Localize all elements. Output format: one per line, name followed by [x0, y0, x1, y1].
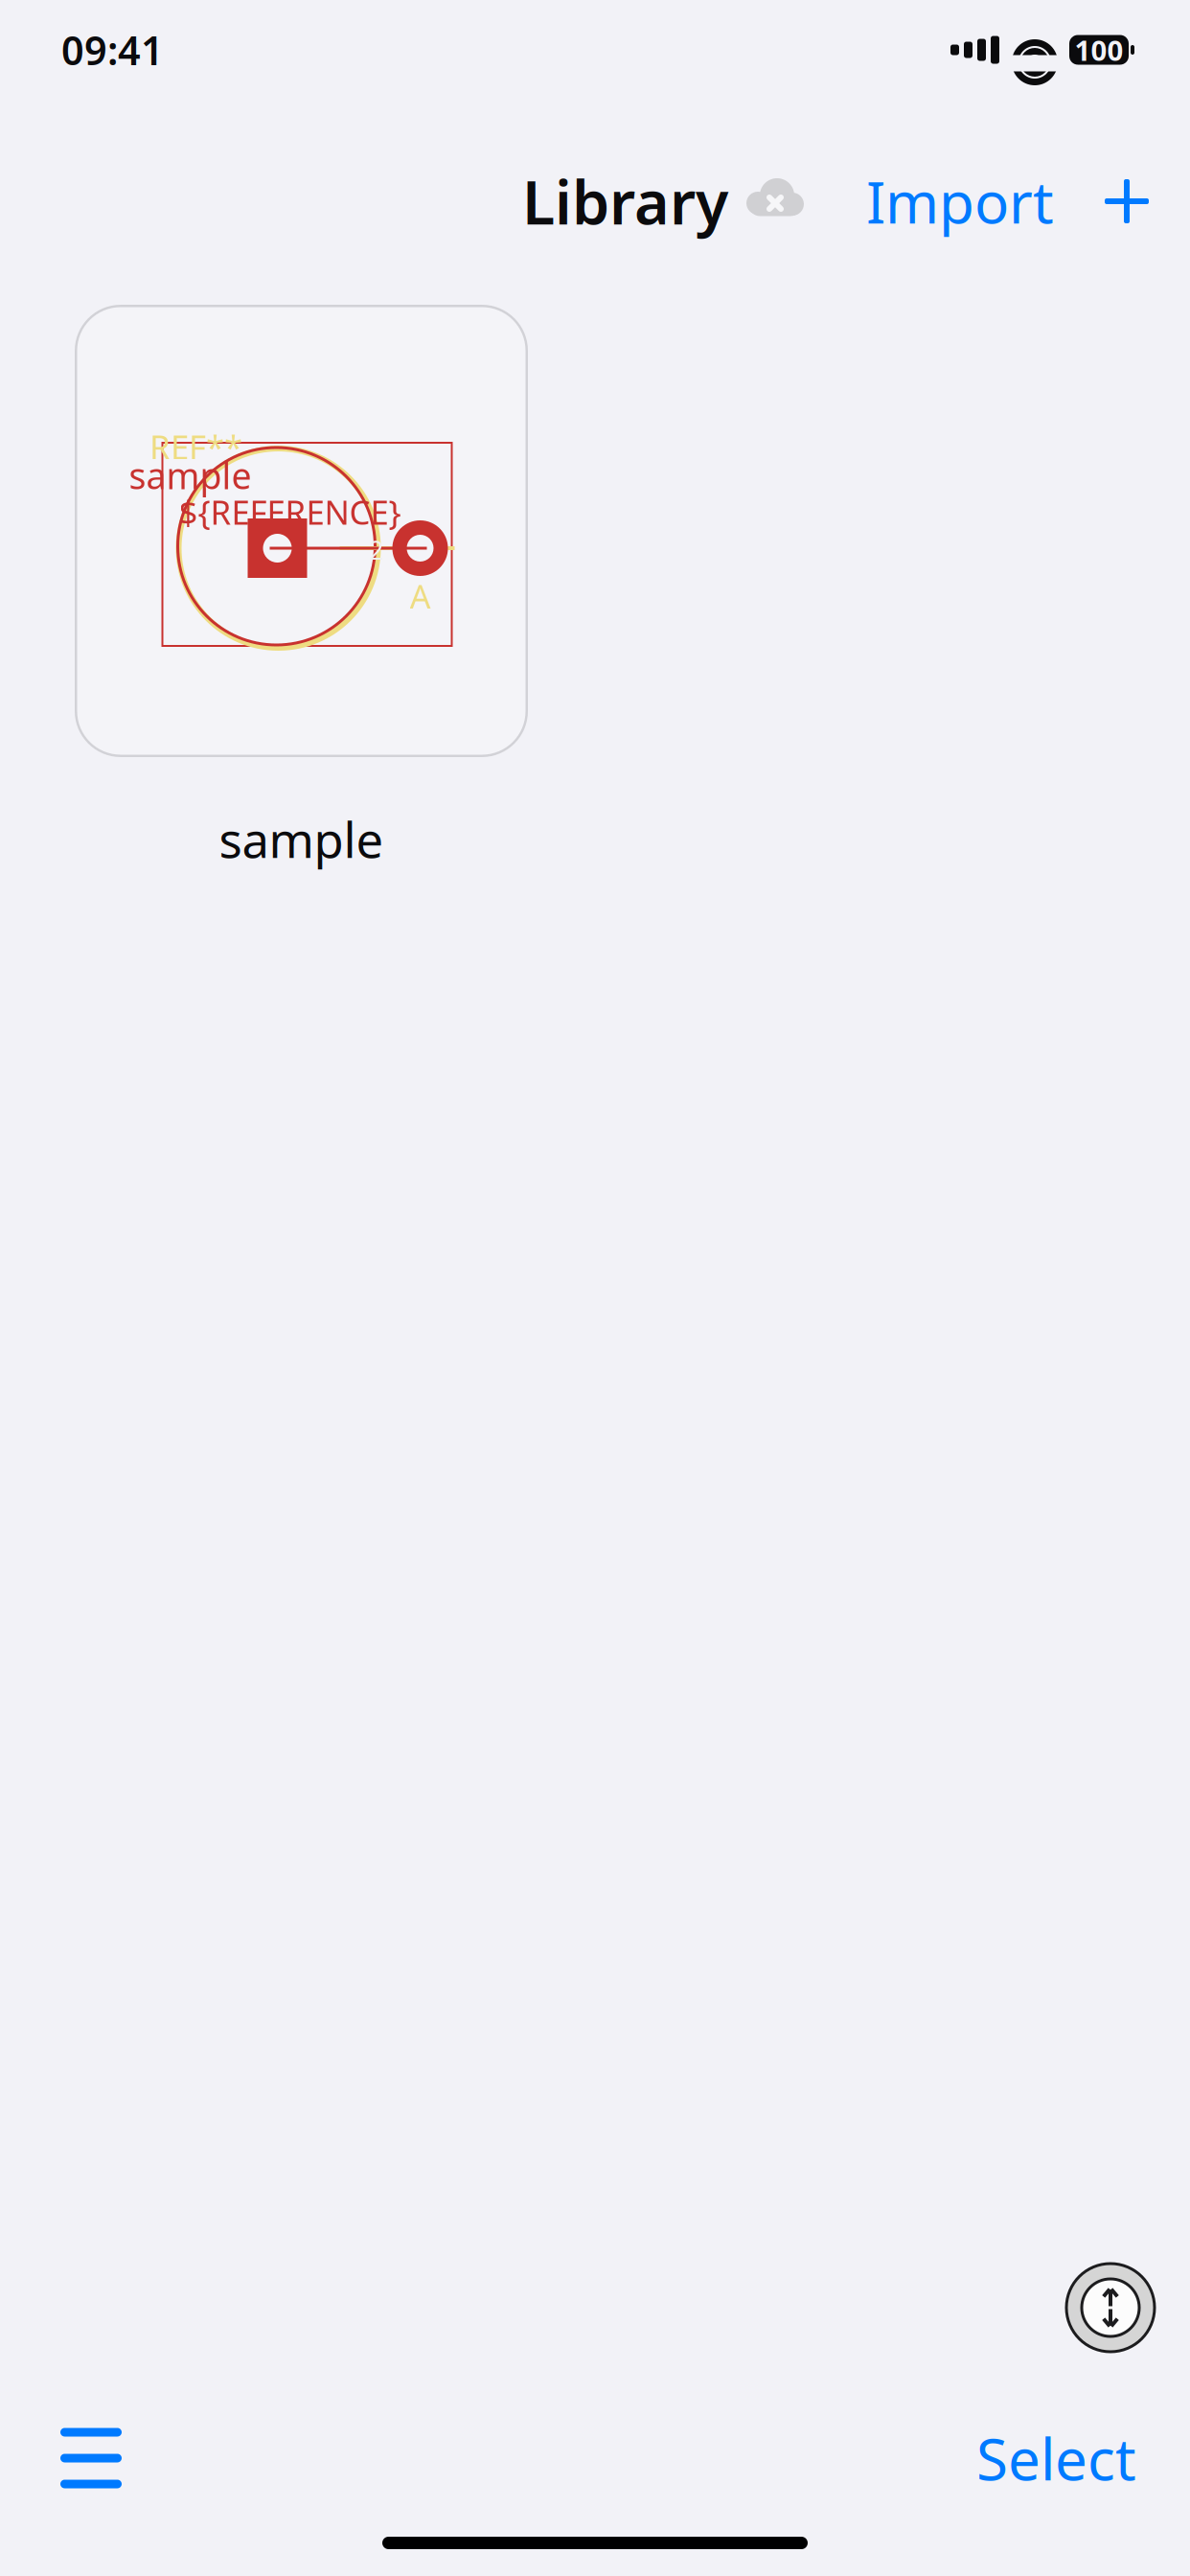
button[interactable]: Select [967, 2408, 1146, 2508]
staticText: Library [522, 161, 728, 241]
button[interactable]: Menu [41, 2411, 141, 2506]
staticText: Select [976, 2420, 1136, 2496]
staticText: ${REFERENCE} [179, 490, 401, 534]
staticText: 100 [1075, 31, 1123, 69]
staticText: Import [866, 163, 1054, 239]
button[interactable]: REF** [75, 305, 528, 757]
button[interactable]: iCloud unavailable [728, 178, 807, 224]
button[interactable]: Scroll [1058, 2255, 1163, 2360]
staticText: A [410, 574, 431, 618]
staticText: sample [129, 452, 252, 499]
staticText: 09:41 [61, 24, 164, 76]
staticText: REF** [149, 425, 242, 469]
button[interactable]: Add [1100, 174, 1154, 228]
button[interactable]: Import [860, 155, 1060, 247]
staticText: sample [219, 807, 384, 871]
staticText: 2 [369, 533, 383, 567]
